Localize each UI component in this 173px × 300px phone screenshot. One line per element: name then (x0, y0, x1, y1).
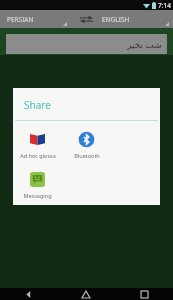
button[interactable]: Home (57, 288, 115, 300)
staticText: 7:14 (158, 1, 171, 10)
button[interactable]: Back (0, 288, 57, 300)
button[interactable]: Recent apps (115, 288, 173, 300)
staticText: Share (24, 98, 51, 112)
button[interactable]: Swap languages (73, 10, 99, 28)
button[interactable]: Messaging (13, 170, 62, 200)
button[interactable]: شب بخیر (6, 34, 167, 54)
staticText: Messaging (23, 192, 52, 199)
staticText: Ad hoc glossa (20, 152, 56, 159)
button[interactable]: Ad hoc glossa (13, 130, 62, 160)
button[interactable]: ENGLISH (99, 10, 173, 28)
staticText: شب بخیر (127, 38, 162, 50)
button[interactable]: Bluetooth (62, 130, 111, 160)
staticText: Bluetooth (74, 152, 100, 159)
button[interactable]: PERSIAN (0, 10, 73, 28)
staticText: ENGLISH (102, 15, 130, 24)
staticText: PERSIAN (7, 15, 34, 24)
